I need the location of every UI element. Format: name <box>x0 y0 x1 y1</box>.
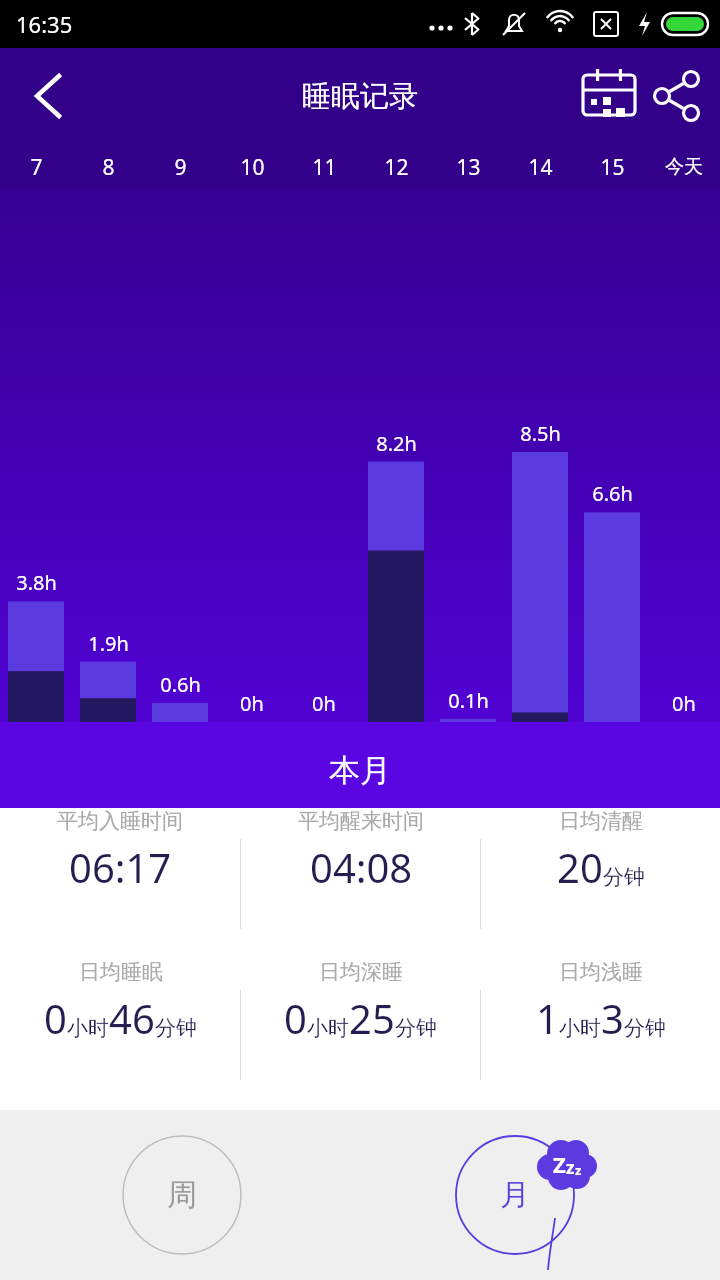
staticText: 今天 <box>665 155 703 179</box>
button[interactable]: 10 <box>216 144 288 190</box>
staticText: 0h <box>312 690 336 717</box>
staticText: 分钟 <box>603 864 645 890</box>
button[interactable]: 日均深睡 <box>241 959 480 1045</box>
staticText: 1 <box>536 991 559 1045</box>
staticText: 日均清醒 <box>559 808 643 834</box>
staticText: 8.5h <box>520 420 561 447</box>
staticText: 0h <box>672 690 696 717</box>
staticText: 月 <box>500 1176 530 1214</box>
staticText: Z <box>553 1149 566 1179</box>
staticText: 12 <box>384 153 409 182</box>
button[interactable]: Back <box>20 68 76 124</box>
button[interactable]: 日均浅睡 <box>481 959 720 1045</box>
staticText: 16:35 <box>16 9 73 39</box>
staticText: 分钟 <box>624 1015 666 1041</box>
staticText: 平均入睡时间 <box>57 808 183 834</box>
button[interactable]: 今天 <box>648 144 720 190</box>
staticText: 9 <box>174 153 187 182</box>
staticText: 14 <box>528 153 553 182</box>
button[interactable]: 14 <box>504 144 576 190</box>
staticText: 分钟 <box>155 1015 197 1041</box>
button[interactable]: 日均清醒 <box>481 808 720 894</box>
button[interactable]: 平均入睡时间 <box>0 808 240 894</box>
button[interactable]: 13 <box>432 144 504 190</box>
staticText: 0 <box>44 991 67 1045</box>
staticText: z <box>566 1156 575 1179</box>
staticText: 睡眠记录 <box>302 78 418 115</box>
staticText: 1.9h <box>88 630 129 657</box>
button[interactable]: 平均醒来时间 <box>241 808 480 894</box>
button[interactable]: 周 <box>122 1135 242 1255</box>
staticText: 0h <box>240 690 264 717</box>
button[interactable]: 12 <box>360 144 432 190</box>
staticText: 10 <box>240 153 265 182</box>
staticText: 小时 <box>559 1015 601 1041</box>
staticText: 日均浅睡 <box>559 959 643 985</box>
staticText: 46 <box>109 991 155 1045</box>
staticText: 8 <box>102 153 115 182</box>
staticText: 周 <box>167 1176 197 1214</box>
button[interactable]: 9 <box>144 144 216 190</box>
staticText: 平均醒来时间 <box>298 808 424 834</box>
staticText: 20 <box>557 840 603 894</box>
button[interactable]: 11 <box>288 144 360 190</box>
staticText: 7 <box>30 153 43 182</box>
staticText: 11 <box>312 153 337 182</box>
staticText: 分钟 <box>395 1015 437 1041</box>
staticText: 15 <box>600 153 625 182</box>
staticText: 25 <box>349 991 395 1045</box>
staticText: z <box>575 1161 582 1179</box>
staticText: 小时 <box>67 1015 109 1041</box>
staticText: 06:17 <box>69 840 172 894</box>
staticText: 0 <box>284 991 307 1045</box>
staticText: 04:08 <box>310 840 413 894</box>
staticText: 13 <box>456 153 481 182</box>
staticText: 0.6h <box>160 671 201 698</box>
staticText: 3 <box>601 991 624 1045</box>
staticText: 本月 <box>329 751 391 790</box>
button[interactable]: 7 <box>0 144 72 190</box>
staticText: 0.1h <box>448 687 489 714</box>
button[interactable]: 月 <box>455 1135 575 1255</box>
button[interactable]: 8 <box>72 144 144 190</box>
staticText: 3.8h <box>16 569 57 596</box>
staticText: 8.2h <box>376 430 417 457</box>
staticText: 小时 <box>307 1015 349 1041</box>
button[interactable]: Share <box>650 68 706 124</box>
button[interactable]: 15 <box>576 144 648 190</box>
staticText: 6.6h <box>592 480 633 507</box>
staticText: 日均深睡 <box>319 959 403 985</box>
staticText: 日均睡眠 <box>79 959 163 985</box>
button[interactable]: Calendar <box>578 65 640 127</box>
button[interactable]: 日均睡眠 <box>0 959 240 1045</box>
